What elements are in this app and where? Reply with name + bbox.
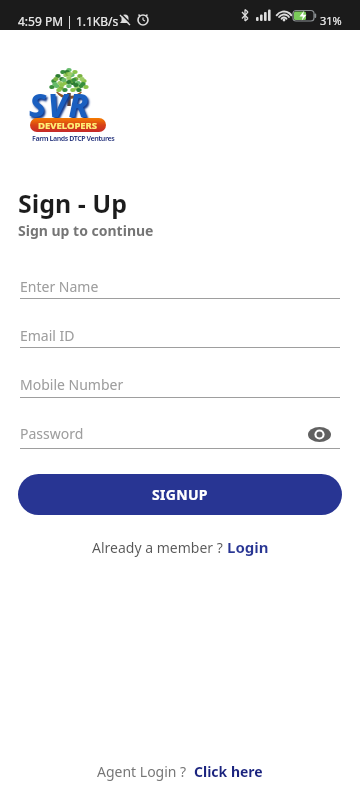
button[interactable]: SIGNUP: [18, 474, 342, 515]
button[interactable]: Enter Name: [20, 268, 340, 299]
staticText: Already a member ?: [92, 538, 227, 557]
button[interactable]: Password: [20, 418, 340, 449]
staticText: SVR: [29, 83, 91, 127]
staticText: Agent Login ?: [97, 762, 194, 781]
staticText: Sign up to continue: [18, 221, 154, 240]
staticText: Farm Lands DTCP Ventures: [32, 134, 115, 144]
staticText: Enter Name: [20, 277, 99, 296]
staticText: DEVELOPERS: [38, 119, 98, 132]
staticText: 4:59 PM | 1.1KB/s: [18, 13, 119, 29]
button[interactable]: Already a member ?: [0, 537, 360, 557]
staticText: Sign - Up: [18, 186, 128, 220]
staticText: Login: [227, 537, 269, 557]
button[interactable]: Email ID: [20, 317, 340, 348]
staticText: Email ID: [20, 326, 75, 345]
staticText: SIGNUP: [152, 485, 208, 504]
staticText: 31%: [320, 13, 342, 28]
staticText: Click here: [194, 762, 263, 781]
staticText: Mobile Number: [20, 375, 124, 394]
button[interactable]: Mobile Number: [20, 367, 340, 398]
button[interactable]: Agent Login ?: [0, 762, 360, 781]
button[interactable]: [300, 420, 338, 448]
staticText: Password: [20, 424, 84, 443]
